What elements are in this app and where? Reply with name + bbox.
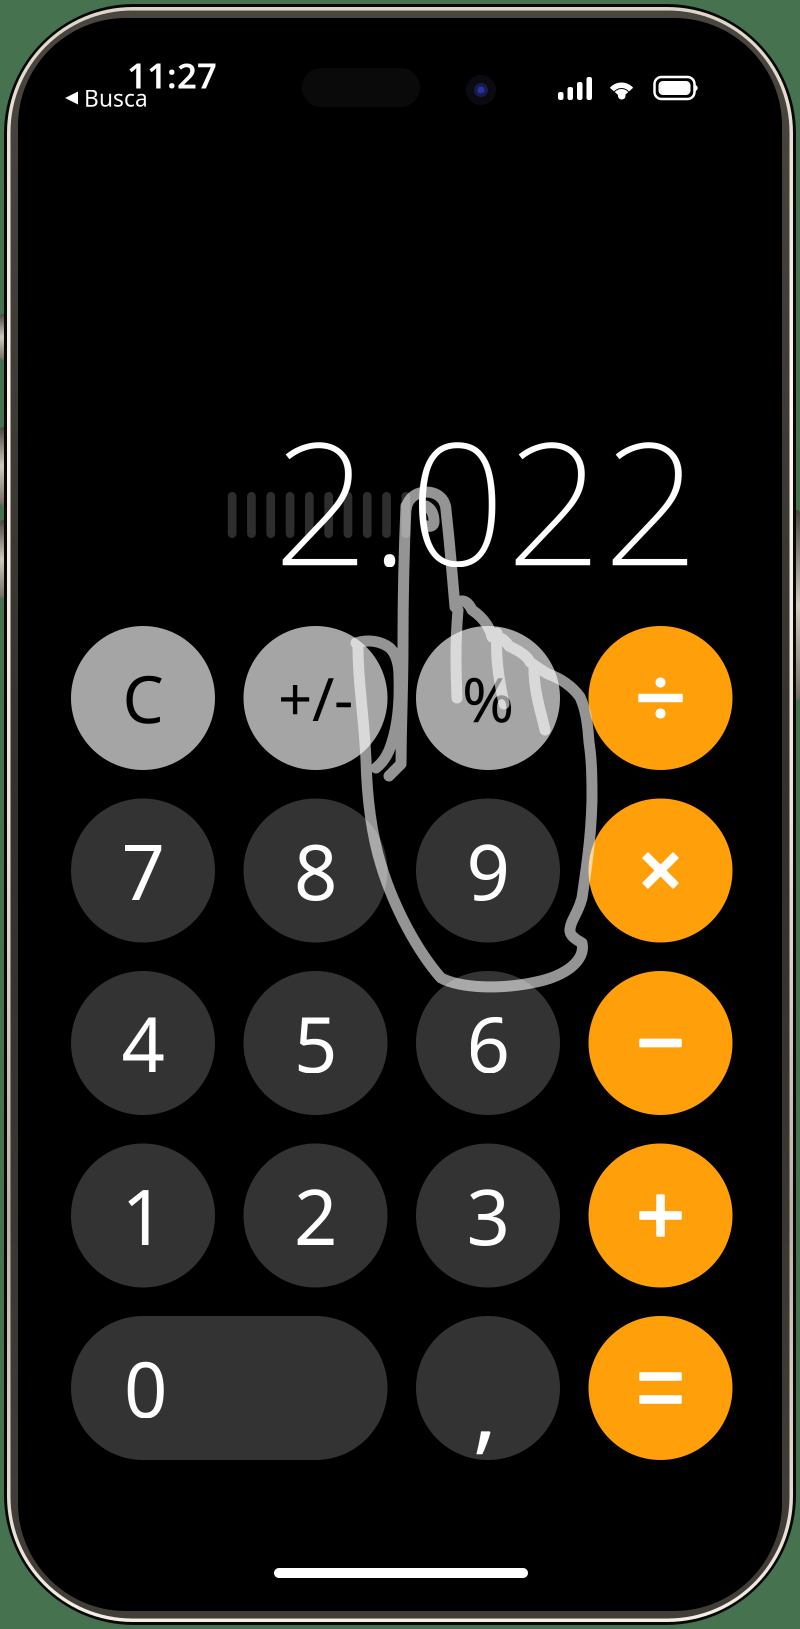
button[interactable]: 7: [71, 798, 215, 942]
staticText: 11:27: [127, 52, 217, 98]
button[interactable]: %: [416, 626, 560, 770]
staticText: Busca: [84, 83, 148, 113]
button[interactable]: +/-: [243, 626, 387, 770]
button[interactable]: 0: [71, 1316, 387, 1460]
button[interactable]: 1: [71, 1143, 215, 1287]
staticText: 6: [466, 992, 509, 1093]
staticText: ,: [472, 1344, 497, 1468]
button[interactable]: 4: [71, 971, 215, 1115]
staticText: 8: [294, 820, 337, 921]
button[interactable]: Multiply: [588, 798, 732, 942]
button[interactable]: 2: [243, 1143, 387, 1287]
button[interactable]: Equals: [588, 1316, 732, 1460]
staticText: 1: [121, 1165, 164, 1266]
staticText: 9: [466, 820, 509, 921]
staticText: 4: [121, 992, 164, 1093]
staticText: 0: [124, 1337, 167, 1438]
staticText: 2: [294, 1165, 337, 1266]
staticText: 7: [121, 820, 164, 921]
staticText: C: [122, 655, 163, 741]
staticText: 2.022: [273, 387, 700, 612]
staticText: 3: [466, 1165, 509, 1266]
button[interactable]: Add: [588, 1143, 732, 1287]
button[interactable]: 8: [243, 798, 387, 942]
button[interactable]: 3: [416, 1143, 560, 1287]
staticText: +/-: [278, 658, 353, 738]
staticText: 5: [294, 992, 337, 1093]
button[interactable]: Divide: [588, 626, 732, 770]
button[interactable]: 5: [243, 971, 387, 1115]
button[interactable]: ,: [416, 1316, 560, 1460]
button[interactable]: 6: [416, 971, 560, 1115]
button[interactable]: C: [71, 626, 215, 770]
button[interactable]: 9: [416, 798, 560, 942]
staticText: %: [462, 656, 514, 740]
button[interactable]: Subtract: [588, 971, 732, 1115]
